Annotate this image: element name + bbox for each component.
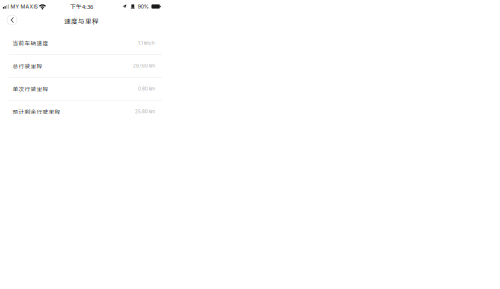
- staticText: 速度与里程: [64, 16, 99, 26]
- staticText: 预计剩余行驶里程: [12, 107, 60, 116]
- button[interactable]: 当前车辆速度: [0, 32, 163, 54]
- staticText: 当前车辆速度: [12, 39, 48, 47]
- staticText: 287.60 km: [133, 63, 155, 69]
- button[interactable]: 预计剩余行驶里程: [0, 100, 163, 123]
- staticText: 下午4:36: [70, 2, 93, 11]
- button[interactable]: 单次行驶里程: [0, 78, 163, 100]
- staticText: 单次行驶里程: [12, 85, 48, 93]
- staticText: 1.1 km/h: [138, 40, 155, 46]
- staticText: MY MAXIS: [10, 3, 37, 10]
- button[interactable]: 总行驶里程: [0, 55, 163, 77]
- staticText: 0.80 km: [138, 86, 155, 91]
- staticText: 90%: [138, 3, 149, 10]
- staticText: 25.80 km: [135, 109, 155, 114]
- button[interactable]: Back: [5, 13, 19, 27]
- staticText: 总行驶里程: [12, 62, 42, 70]
